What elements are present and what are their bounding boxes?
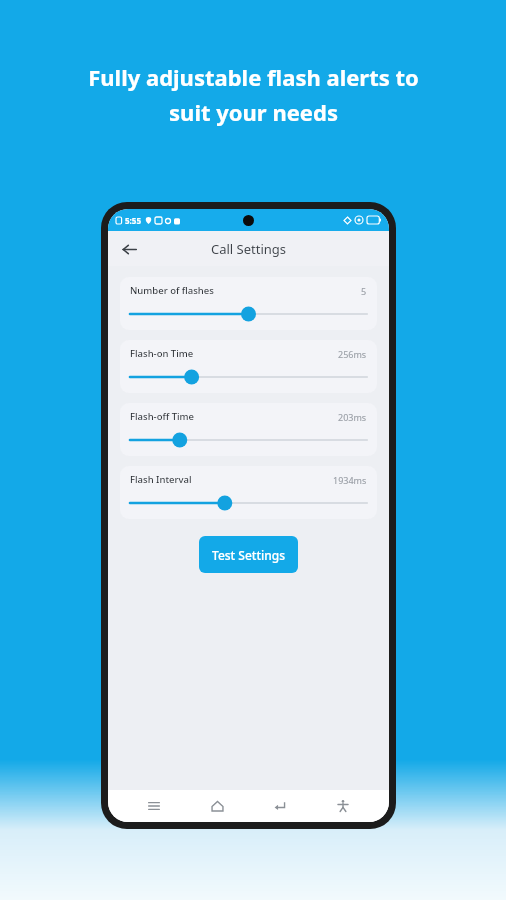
button[interactable]: Home: [204, 793, 230, 819]
staticText: Flash Interval: [130, 473, 192, 486]
staticText: Number of flashes: [130, 284, 214, 297]
button[interactable]: Accessibility: [330, 793, 356, 819]
button[interactable]: Flash-on Time: [120, 340, 377, 393]
button[interactable]: Slider: [130, 432, 367, 448]
staticText: 5: [361, 285, 367, 297]
button[interactable]: Flash-off Time: [120, 403, 377, 456]
button[interactable]: Number of flashes: [120, 277, 377, 330]
button[interactable]: Recents: [141, 793, 167, 819]
staticText: Fully adjustable flash alerts to: [88, 62, 419, 92]
button[interactable]: Slider: [130, 306, 367, 322]
button[interactable]: Back: [114, 234, 144, 264]
staticText: 5:55: [125, 215, 141, 226]
button[interactable]: Back: [267, 793, 293, 819]
staticText: 256ms: [338, 348, 367, 360]
button[interactable]: Flash Interval: [120, 466, 377, 519]
staticText: Call Settings: [211, 240, 287, 258]
staticText: Flash-on Time: [130, 347, 194, 360]
button[interactable]: Test Settings: [199, 536, 298, 573]
staticText: suit your needs: [169, 97, 338, 127]
staticText: Flash-off Time: [130, 410, 195, 423]
button[interactable]: Slider: [130, 495, 367, 511]
staticText: 203ms: [338, 411, 367, 423]
button[interactable]: Slider: [130, 369, 367, 385]
staticText: Test Settings: [212, 547, 286, 563]
staticText: 1934ms: [333, 474, 367, 486]
